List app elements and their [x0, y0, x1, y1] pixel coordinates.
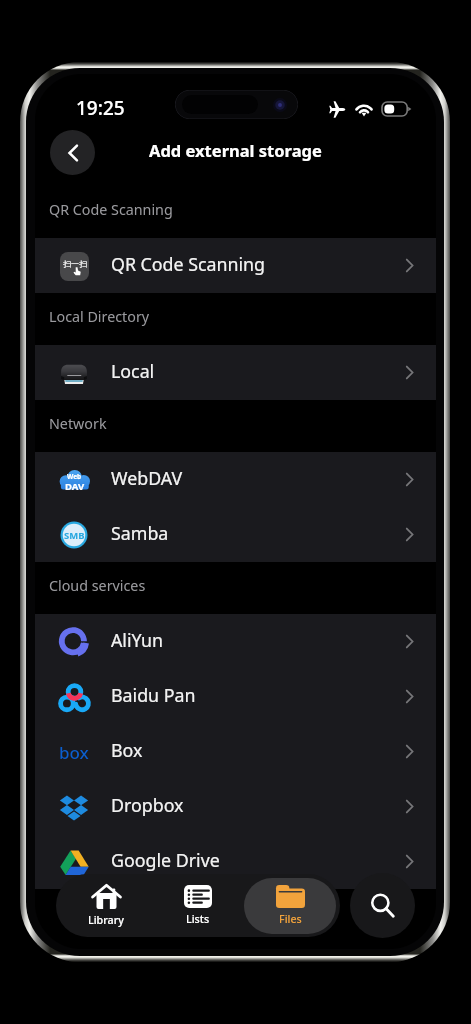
staticText: QR Code Scanning — [111, 252, 266, 276]
button[interactable]: 扫一扫 — [35, 238, 436, 293]
button[interactable]: AliYun — [35, 614, 436, 669]
staticText: 扫一扫 — [63, 259, 87, 269]
staticText: 19:25 — [76, 95, 125, 121]
button[interactable]: Dropbox — [35, 779, 436, 834]
button[interactable]: Local — [35, 345, 436, 400]
staticText: Dropbox — [111, 793, 184, 817]
button[interactable]: Web — [35, 452, 436, 507]
staticText: Lists — [186, 912, 210, 927]
staticText: Google Drive — [111, 848, 220, 872]
staticText: box — [59, 741, 89, 764]
staticText: Local Directory — [49, 307, 150, 326]
button[interactable]: Back — [50, 130, 95, 175]
staticText: AliYun — [111, 628, 164, 652]
staticText: WebDAV — [111, 466, 183, 490]
button[interactable]: Google Drive — [35, 834, 436, 889]
button[interactable]: Files — [244, 878, 336, 934]
staticText: DAV — [65, 480, 85, 491]
staticText: Local — [111, 359, 155, 383]
button[interactable]: Library — [60, 878, 152, 934]
button[interactable]: Search — [350, 873, 415, 938]
staticText: Library — [88, 913, 124, 928]
staticText: Network — [49, 414, 107, 433]
staticText: Baidu Pan — [111, 683, 196, 707]
button[interactable]: SMB — [35, 507, 436, 562]
button[interactable]: Lists — [152, 878, 244, 934]
staticText: SMB — [64, 529, 85, 542]
staticText: Cloud services — [49, 576, 146, 595]
staticText: Web — [67, 472, 82, 481]
staticText: Samba — [111, 521, 169, 545]
staticText: Add external storage — [149, 139, 322, 161]
staticText: QR Code Scanning — [49, 200, 173, 219]
staticText: Box — [111, 738, 143, 762]
button[interactable]: box — [35, 724, 436, 779]
staticText: Files — [279, 912, 302, 927]
button[interactable]: Baidu Pan — [35, 669, 436, 724]
